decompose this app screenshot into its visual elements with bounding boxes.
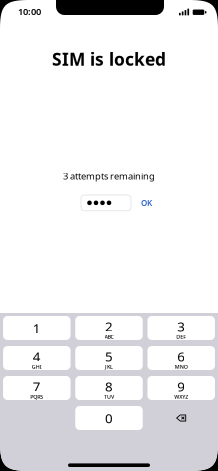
button[interactable]: 5 — [75, 346, 143, 370]
button[interactable]: 8 — [75, 376, 143, 400]
staticText: 8 — [105, 377, 113, 395]
staticText: 7 — [33, 377, 41, 395]
button[interactable]: 7 — [3, 376, 70, 400]
button[interactable]: Delete — [147, 406, 215, 430]
staticText: PQRS — [30, 393, 43, 400]
button[interactable]: 1 — [3, 316, 70, 340]
staticText: SIM is locked — [52, 47, 166, 70]
staticText: 2 — [105, 317, 113, 335]
button[interactable]: 4 — [3, 346, 70, 370]
button[interactable]: 0 — [75, 406, 143, 430]
staticText: 3 — [177, 317, 185, 335]
button[interactable]: 3 — [147, 316, 215, 340]
button[interactable]: 9 — [147, 376, 215, 400]
staticText: JKL — [105, 363, 113, 370]
staticText: 9 — [177, 377, 185, 395]
staticText: GHI — [32, 363, 42, 370]
button[interactable]: OK — [131, 197, 152, 208]
staticText: 0 — [105, 409, 113, 427]
staticText: MNO — [175, 363, 188, 370]
button[interactable]: 2 — [75, 316, 143, 340]
staticText: 4 — [33, 347, 41, 365]
staticText: 3 attempts remaining — [63, 170, 155, 182]
staticText: WXYZ — [174, 393, 188, 400]
staticText: OK — [141, 197, 152, 208]
staticText: 10:00 — [18, 5, 41, 18]
staticText: 1 — [33, 319, 41, 337]
staticText: DEF — [176, 333, 186, 340]
staticText: ABC — [104, 333, 113, 340]
staticText: 6 — [177, 347, 185, 365]
button[interactable]: 6 — [147, 346, 215, 370]
staticText: TUV — [104, 393, 114, 400]
staticText: 5 — [105, 347, 113, 365]
